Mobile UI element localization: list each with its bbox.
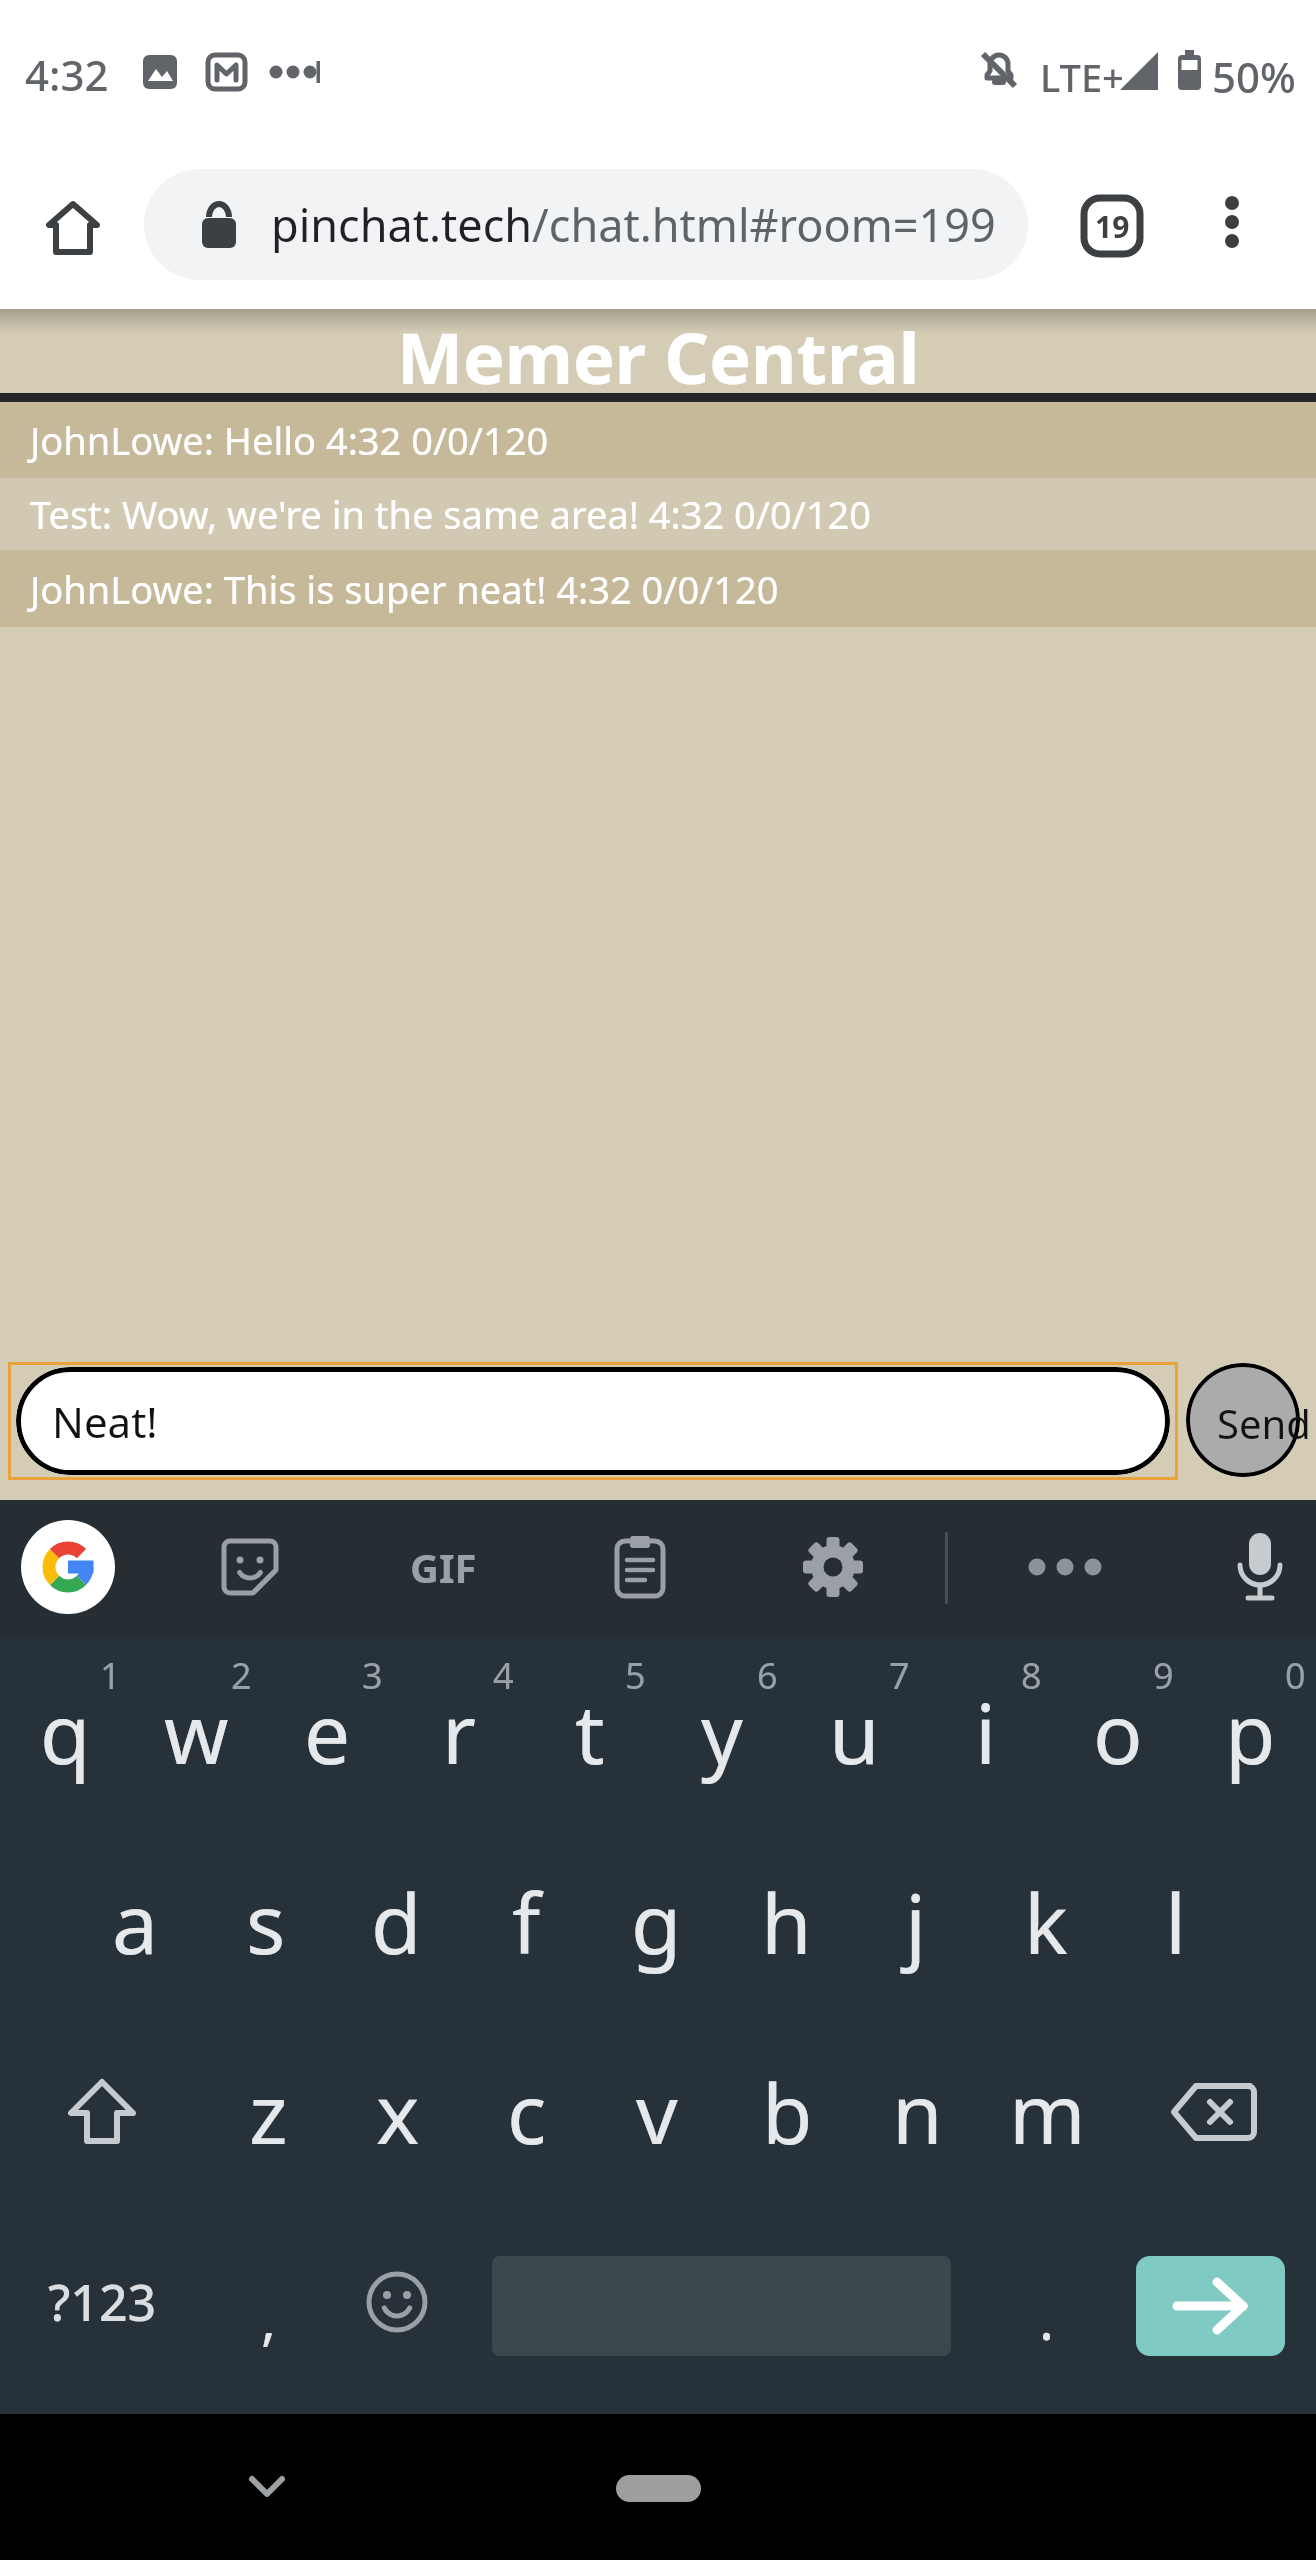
button[interactable] xyxy=(616,2475,701,2502)
staticText: 4 xyxy=(493,1651,514,1700)
button[interactable]: m xyxy=(982,2017,1112,2207)
staticText: 0 xyxy=(1285,1651,1306,1700)
staticText: 9 xyxy=(1153,1651,1174,1700)
button[interactable] xyxy=(33,188,113,268)
button[interactable] xyxy=(203,1520,297,1614)
staticText: c xyxy=(507,2056,547,2168)
staticText: x xyxy=(376,2056,420,2168)
staticText: . xyxy=(1039,2280,1055,2356)
button[interactable]: 3 xyxy=(262,1637,393,1827)
button[interactable]: v xyxy=(592,2017,722,2207)
staticText: 7 xyxy=(889,1651,910,1700)
button[interactable]: a xyxy=(70,1827,201,2017)
staticText: w xyxy=(164,1676,229,1788)
button[interactable]: s xyxy=(201,1827,331,2017)
staticText: a xyxy=(112,1866,159,1978)
button[interactable] xyxy=(1213,1520,1307,1614)
staticText: t xyxy=(575,1676,605,1788)
button[interactable]: g xyxy=(591,1827,721,2017)
staticText: k xyxy=(1024,1866,1068,1978)
staticText: g xyxy=(631,1866,682,1978)
staticText: s xyxy=(246,1866,286,1978)
staticText: o xyxy=(1093,1676,1143,1788)
staticText: f xyxy=(512,1866,541,1978)
button[interactable]: l xyxy=(1111,1827,1241,2017)
button[interactable] xyxy=(1018,1520,1112,1614)
staticText: u xyxy=(829,1676,880,1788)
staticText: v xyxy=(636,2056,678,2168)
button[interactable]: 8 xyxy=(920,1637,1052,1827)
button[interactable]: k xyxy=(981,1827,1111,2017)
button[interactable]: 6 xyxy=(656,1637,788,1827)
button[interactable]: n xyxy=(852,2017,982,2207)
staticText: 50% xyxy=(1212,48,1296,105)
staticText: j xyxy=(905,1866,927,1978)
staticText: Send xyxy=(1217,1396,1311,1450)
staticText: 6 xyxy=(757,1651,778,1700)
button[interactable] xyxy=(786,1520,880,1614)
staticText: Neat! xyxy=(52,1393,158,1450)
button[interactable]: f xyxy=(461,1827,591,2017)
staticText: i xyxy=(975,1676,997,1788)
button[interactable]: GIF xyxy=(396,1520,490,1614)
staticText: GIF xyxy=(410,1540,477,1594)
staticText: Memer Central xyxy=(397,309,920,393)
staticText: q xyxy=(40,1676,91,1788)
button[interactable]: 9 xyxy=(1052,1637,1184,1827)
staticText: p xyxy=(1225,1676,1276,1788)
staticText: r xyxy=(442,1676,476,1788)
button[interactable]: d xyxy=(331,1827,461,2017)
button[interactable] xyxy=(334,2207,460,2397)
button[interactable]: 5 xyxy=(524,1637,656,1827)
staticText: 2 xyxy=(231,1651,252,1700)
button[interactable]: , xyxy=(204,2207,334,2397)
staticText: pinchat.tech/chat.html#room=199 xyxy=(271,194,996,255)
button[interactable] xyxy=(1136,2256,1285,2356)
button[interactable]: 0 xyxy=(1184,1637,1316,1827)
staticText: 5 xyxy=(625,1651,646,1700)
staticText: z xyxy=(249,2056,288,2168)
staticText: m xyxy=(1009,2056,1086,2168)
button[interactable]: 1 xyxy=(0,1637,131,1827)
staticText: JohnLowe: This is super neat! 4:32 0/0/1… xyxy=(30,563,779,615)
staticText: 3 xyxy=(362,1651,383,1700)
button[interactable]: 19 xyxy=(1068,182,1156,270)
staticText: l xyxy=(1165,1866,1187,1978)
staticText: d xyxy=(371,1866,422,1978)
button[interactable] xyxy=(1186,1363,1300,1477)
staticText: LTE+ xyxy=(1040,51,1124,103)
button[interactable]: . xyxy=(981,2207,1113,2397)
staticText: n xyxy=(892,2056,943,2168)
button[interactable] xyxy=(21,1520,115,1614)
staticText: y xyxy=(701,1676,743,1788)
button[interactable]: pinchat.tech/chat.html#room=199 xyxy=(144,169,1028,280)
button[interactable]: x xyxy=(333,2017,462,2207)
button[interactable] xyxy=(1196,186,1268,258)
button[interactable]: Neat! xyxy=(16,1367,1170,1475)
staticText: ?123 xyxy=(48,2268,157,2336)
button[interactable]: b xyxy=(722,2017,852,2207)
button[interactable]: 2 xyxy=(131,1637,262,1827)
staticText: b xyxy=(762,2056,813,2168)
button[interactable]: z xyxy=(204,2017,333,2207)
staticText: e xyxy=(304,1676,351,1788)
staticText: 8 xyxy=(1021,1651,1042,1700)
button[interactable]: j xyxy=(851,1827,981,2017)
button[interactable]: 7 xyxy=(788,1637,920,1827)
button[interactable] xyxy=(593,1520,687,1614)
staticText: JohnLowe: Hello 4:32 0/0/120 xyxy=(30,414,549,466)
button[interactable] xyxy=(0,2017,204,2207)
button[interactable]: 4 xyxy=(393,1637,524,1827)
staticText: 4:32 xyxy=(25,46,109,103)
button[interactable]: c xyxy=(462,2017,592,2207)
staticText: h xyxy=(761,1866,812,1978)
button[interactable] xyxy=(237,2457,297,2517)
staticText: Test: Wow, we're in the same area! 4:32 … xyxy=(30,488,872,540)
staticText: 1 xyxy=(100,1651,121,1700)
staticText: , xyxy=(261,2280,277,2356)
button[interactable]: ?123 xyxy=(0,2207,204,2397)
button[interactable]: h xyxy=(721,1827,851,2017)
staticText: 19 xyxy=(1095,206,1130,247)
button[interactable] xyxy=(1112,2017,1316,2207)
